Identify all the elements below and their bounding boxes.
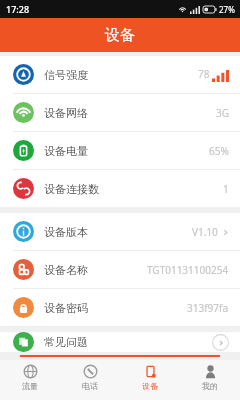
button[interactable]: 设备密码: [0, 289, 240, 326]
staticText: V1.10: [192, 225, 218, 239]
staticText: 流量: [22, 381, 38, 391]
staticText: 27%: [219, 4, 235, 15]
button[interactable]: 设备电量: [0, 132, 240, 169]
staticText: 3G: [216, 106, 229, 120]
staticText: 设备密码: [44, 301, 88, 315]
staticText: 设备连接数: [44, 182, 99, 196]
button[interactable]: 设备名称: [0, 251, 240, 288]
button[interactable]: 我的: [180, 360, 240, 400]
staticText: 设备网络: [44, 106, 88, 120]
staticText: 设备版本: [44, 225, 88, 239]
staticText: TGT01131100254: [147, 263, 229, 277]
staticText: 设备: [142, 381, 158, 391]
staticText: 65%: [209, 144, 229, 158]
staticText: 17:28: [6, 3, 30, 15]
button[interactable]: 常见问题: [0, 332, 240, 352]
staticText: 1: [223, 182, 229, 196]
staticText: 设备电量: [44, 144, 88, 158]
staticText: 78: [198, 67, 210, 81]
staticText: 我的: [202, 381, 218, 391]
button[interactable]: 设备连接数: [0, 170, 240, 207]
staticText: 设备: [105, 26, 135, 45]
button[interactable]: 设备网络: [0, 94, 240, 131]
button[interactable]: 设备: [120, 360, 180, 400]
staticText: 设备名称: [44, 263, 88, 277]
staticText: 电话: [82, 381, 98, 391]
button[interactable]: 设备版本: [0, 213, 240, 250]
staticText: 信号强度: [44, 68, 88, 82]
button[interactable]: 流量: [0, 360, 60, 400]
staticText: 313f97fa: [187, 301, 229, 315]
staticText: 常见问题: [44, 335, 88, 349]
button[interactable]: 信号强度: [0, 56, 240, 93]
button[interactable]: 电话: [60, 360, 120, 400]
